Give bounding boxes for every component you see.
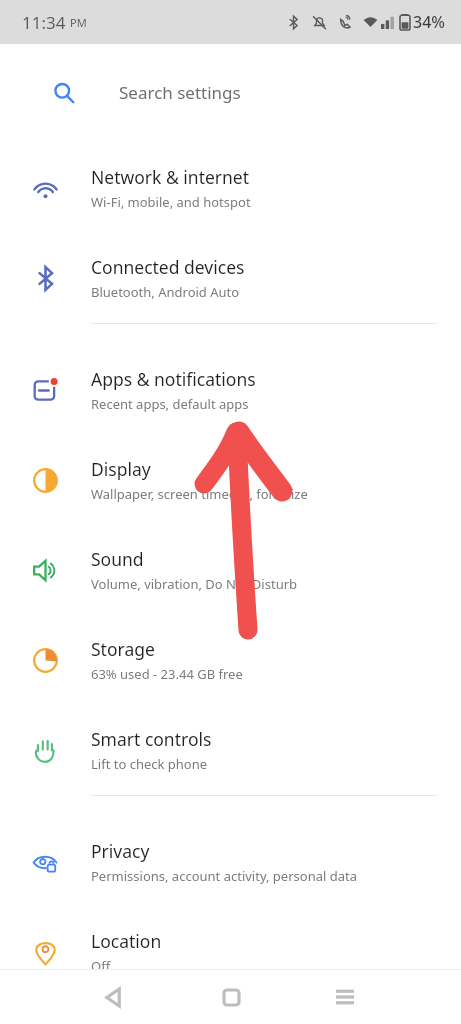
staticText: Display	[91, 457, 151, 481]
staticText: 34%	[413, 11, 445, 33]
staticText: PM	[70, 15, 87, 30]
button[interactable]: Privacy	[0, 817, 461, 907]
staticText: Location	[91, 929, 162, 953]
staticText: Bluetooth, Android Auto	[91, 283, 240, 301]
staticText: Search settings	[119, 81, 241, 104]
button[interactable]: Storage	[0, 615, 461, 705]
staticText: Apps & notifications	[91, 367, 256, 391]
staticText: Volume, vibration, Do Not Disturb	[91, 575, 298, 593]
staticText: Lift to check phone	[91, 755, 208, 773]
button[interactable]: Back	[95, 978, 133, 1016]
button[interactable]: Smart controls	[0, 705, 461, 795]
staticText: Permissions, account activity, personal …	[91, 867, 357, 885]
staticText: 11:34	[22, 11, 66, 34]
button[interactable]: Location	[0, 907, 461, 997]
staticText: Wi-Fi, mobile, and hotspot	[91, 193, 251, 211]
button[interactable]: Sound	[0, 525, 461, 615]
staticText: 63% used - 23.44 GB free	[91, 665, 243, 683]
staticText: Privacy	[91, 839, 150, 863]
staticText: Recent apps, default apps	[91, 395, 249, 413]
button[interactable]: Apps & notifications	[0, 345, 461, 435]
button[interactable]: Recents	[326, 978, 364, 1016]
button[interactable]: Home	[212, 978, 250, 1016]
staticText: Wallpaper, screen timeout, font size	[91, 485, 308, 503]
button[interactable]: Network & internet	[0, 143, 461, 233]
button[interactable]: Search settings	[22, 65, 440, 120]
staticText: Connected devices	[91, 255, 245, 279]
staticText: Smart controls	[91, 727, 212, 751]
staticText: Network & internet	[91, 165, 250, 189]
button[interactable]: Connected devices	[0, 233, 461, 323]
staticText: Storage	[91, 637, 155, 661]
staticText: Off	[91, 957, 111, 975]
button[interactable]: Display	[0, 435, 461, 525]
staticText: Sound	[91, 547, 144, 571]
